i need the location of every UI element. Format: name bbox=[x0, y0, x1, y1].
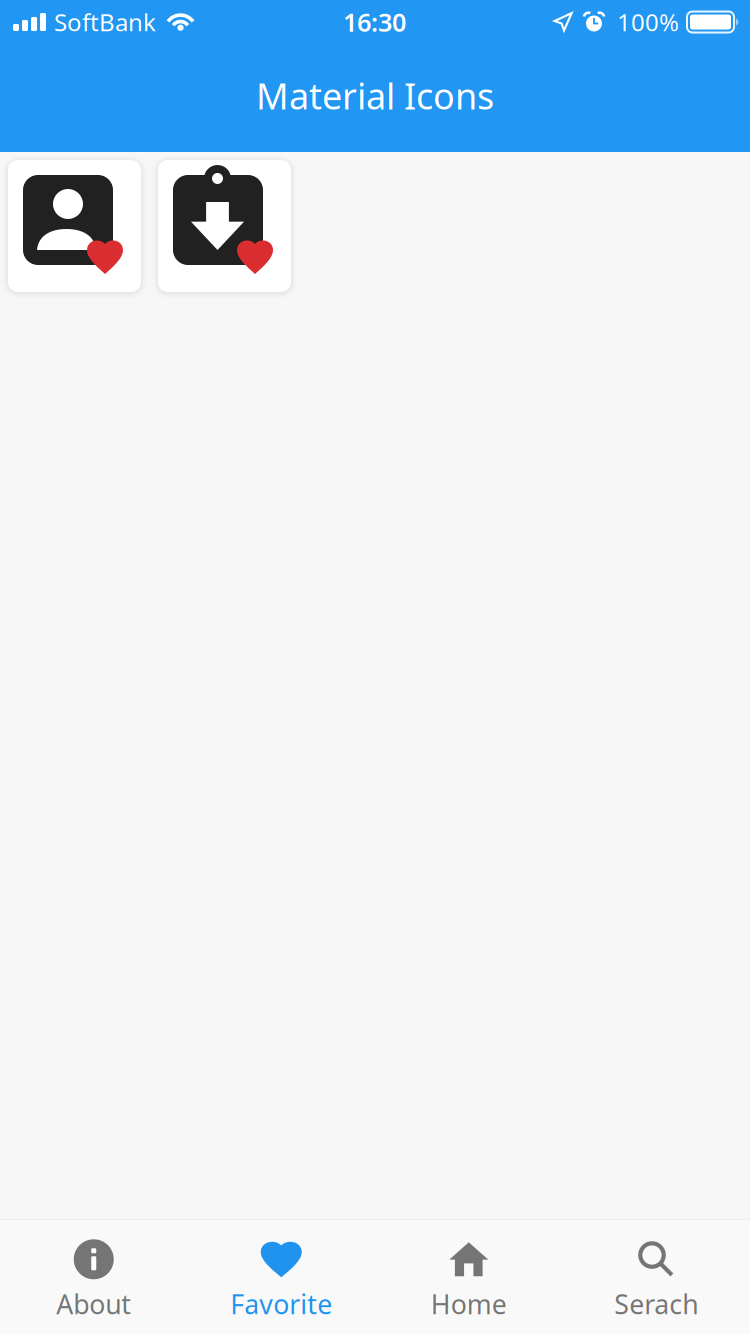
staticText: About bbox=[56, 1286, 131, 1322]
staticText: 16:30 bbox=[343, 5, 406, 39]
staticText: Serach bbox=[614, 1286, 698, 1322]
button[interactable]: Serach bbox=[562, 1214, 750, 1334]
staticText: Material Icons bbox=[256, 72, 494, 119]
button[interactable]: Favorite bbox=[187, 1214, 375, 1334]
button[interactable]: Home bbox=[375, 1214, 562, 1334]
staticText: 100% bbox=[617, 6, 679, 38]
button[interactable]: Account box, favorite bbox=[8, 160, 141, 292]
staticText: Home bbox=[431, 1286, 507, 1322]
staticText: SoftBank bbox=[54, 6, 156, 38]
button[interactable]: About bbox=[0, 1214, 187, 1334]
staticText: Favorite bbox=[230, 1286, 332, 1322]
button[interactable]: Assignment returned, favorite bbox=[158, 160, 291, 292]
